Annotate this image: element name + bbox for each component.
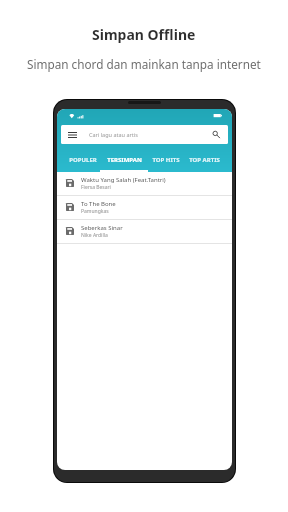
staticText: Nike Ardilla — [81, 232, 108, 239]
other: Search — [213, 131, 220, 139]
button[interactable]: TOP HITS — [151, 146, 180, 174]
button[interactable]: Menu — [61, 125, 228, 144]
staticText: Simpan chord dan mainkan tanpa internet — [27, 56, 261, 72]
staticText: Simpan Offline — [92, 25, 196, 44]
staticText: TOP ARTIS — [189, 156, 220, 164]
staticText: Cari lagu atau artis — [89, 131, 138, 138]
staticText: TOP HITS — [152, 156, 180, 164]
staticText: To The Bone — [81, 200, 116, 208]
staticText: Waktu Yang Salah (Feat.Tantri) — [81, 176, 166, 184]
button[interactable]: TERSIMPAN — [107, 146, 142, 174]
other: Menu — [68, 132, 77, 138]
button[interactable]: POPULER — [67, 146, 98, 174]
staticText: Fiersa Besari — [81, 184, 111, 191]
button[interactable]: Seberkas Sinar — [57, 220, 232, 243]
staticText: Seberkas Sinar — [81, 224, 123, 232]
button[interactable]: Waktu Yang Salah (Feat.Tantri) — [57, 172, 232, 195]
staticText: POPULER — [69, 156, 97, 164]
staticText: TERSIMPAN — [107, 156, 142, 164]
button[interactable]: TOP ARTIS — [189, 146, 220, 174]
button[interactable]: To The Bone — [57, 196, 232, 219]
staticText: Pamungkas — [81, 208, 109, 215]
